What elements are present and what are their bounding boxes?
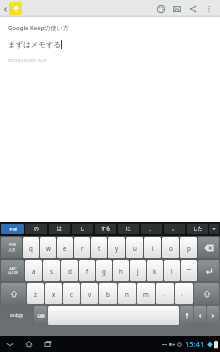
button[interactable]: 予測 (1, 224, 24, 234)
staticText: ABC あ123 (8, 266, 18, 276)
button[interactable]: h (113, 260, 129, 281)
staticText: に (126, 226, 131, 232)
button[interactable]: e (57, 237, 73, 258)
staticText: は (57, 226, 62, 232)
button[interactable]: は (49, 224, 70, 234)
button[interactable]: b (99, 283, 117, 304)
staticText: 。 (181, 290, 187, 297)
button[interactable]: y (108, 237, 125, 258)
button[interactable]: d (61, 260, 78, 281)
button[interactable]: o (162, 237, 179, 258)
staticText: e (63, 244, 67, 252)
staticText: ー (186, 267, 192, 274)
button[interactable]: More suggestions (209, 224, 219, 234)
staticText: f (86, 267, 89, 275)
staticText: 。 (172, 226, 177, 232)
button[interactable]: z (27, 283, 44, 304)
button[interactable]: Hide keyboard (3, 336, 16, 352)
staticText: 2013年2月20日 15:41 (8, 58, 48, 63)
staticText: u (133, 244, 137, 252)
button[interactable]: g (96, 260, 112, 281)
button[interactable]: f (79, 260, 95, 281)
button[interactable]: Share (185, 0, 201, 17)
button[interactable]: c (63, 283, 80, 304)
button[interactable]: w (40, 237, 56, 258)
staticText: s (50, 267, 53, 275)
staticText: する (101, 226, 111, 232)
staticText: した (193, 226, 203, 232)
button[interactable]: a (25, 260, 42, 281)
staticText: z (34, 290, 37, 298)
button[interactable]: x (45, 283, 62, 304)
button[interactable]: 、 (156, 283, 174, 304)
staticText: 予測 入力 (8, 243, 16, 252)
button[interactable]: 予測 入力 (1, 237, 22, 258)
button[interactable]: m (137, 283, 155, 304)
button[interactable]: Google Keep (9, 2, 22, 15)
staticText: t (98, 244, 101, 252)
button[interactable]: Backspace (198, 237, 219, 258)
button[interactable]: Enter (198, 260, 219, 281)
button[interactable]: 。 (164, 224, 185, 234)
staticText: まずはメモする (8, 40, 61, 49)
staticText: i (152, 244, 154, 252)
staticText: c (70, 290, 73, 298)
staticText: o (169, 244, 173, 252)
button[interactable]: j (130, 260, 146, 281)
staticText: k (153, 267, 157, 275)
button[interactable]: 、 (141, 224, 162, 234)
button[interactable]: Recent apps (41, 336, 54, 352)
staticText: b (106, 290, 110, 298)
button[interactable]: i (144, 237, 161, 258)
button[interactable]: ー (181, 260, 197, 281)
button[interactable]: k (147, 260, 163, 281)
staticText: p (187, 244, 191, 252)
button[interactable]: s (43, 260, 60, 281)
button[interactable]: Shift (1, 283, 26, 304)
staticText: 15:41 (185, 339, 205, 349)
button[interactable]: する (95, 224, 116, 234)
button[interactable]: Change color (153, 0, 169, 17)
button[interactable]: に (118, 224, 139, 234)
button[interactable]: q (23, 237, 39, 258)
button[interactable]: u (126, 237, 143, 258)
button[interactable]: ABC あ123 (1, 260, 24, 281)
staticText: Google Keepの使い方 (8, 24, 69, 32)
button[interactable]: 。 (175, 283, 193, 304)
button[interactable]: t (91, 237, 107, 258)
button[interactable]: r (74, 237, 90, 258)
button[interactable]: し (72, 224, 93, 234)
staticText: 日本語 (10, 313, 24, 319)
staticText: j (137, 267, 139, 275)
button[interactable]: p (180, 237, 197, 258)
staticText: l (171, 267, 173, 275)
staticText: d (68, 267, 72, 275)
button[interactable]: Voice input (180, 306, 193, 325)
staticText: h (119, 267, 123, 275)
button[interactable]: Cursor right (207, 306, 219, 325)
button[interactable]: Add image (169, 0, 185, 17)
button[interactable]: の (25, 224, 47, 234)
button[interactable]: した (187, 224, 208, 234)
button[interactable]: Cursor left (194, 306, 206, 325)
staticText: w (46, 244, 51, 252)
button[interactable]: Home (22, 336, 35, 352)
staticText: し (80, 226, 85, 232)
button[interactable]: Shift (194, 283, 219, 304)
staticText: q (29, 244, 33, 252)
button[interactable]: l (164, 260, 180, 281)
staticText: 予測 (9, 227, 17, 232)
staticText: m (143, 290, 149, 298)
button[interactable]: Back (1, 1, 9, 17)
button[interactable]: Switch keyboard (34, 306, 47, 325)
button[interactable]: v (81, 283, 98, 304)
button[interactable]: More options (201, 0, 217, 17)
staticText: の (34, 226, 39, 232)
staticText: y (115, 244, 119, 252)
staticText: 、 (149, 226, 154, 232)
button[interactable]: Space (48, 306, 179, 325)
staticText: g (102, 267, 106, 275)
staticText: x (52, 290, 56, 298)
button[interactable]: n (118, 283, 136, 304)
button[interactable]: 日本語 (1, 306, 33, 325)
